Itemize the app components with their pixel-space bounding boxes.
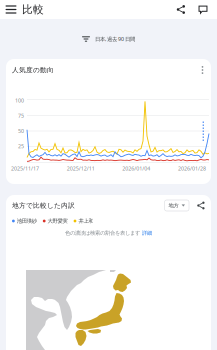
staticText: 大野愛実 bbox=[48, 218, 68, 224]
staticText: 2026/01/28 bbox=[178, 165, 206, 172]
button[interactable]: 詳細 bbox=[142, 230, 152, 236]
staticText: 詳細 bbox=[142, 230, 152, 236]
staticText: 比較 bbox=[22, 3, 44, 16]
button[interactable]: Share bbox=[170, 0, 192, 19]
button[interactable]: Share bbox=[195, 199, 207, 212]
staticText: 地方で比較した内訳 bbox=[12, 201, 75, 210]
staticText: 色の濃淡は検索の割合を表します bbox=[65, 230, 140, 236]
button[interactable]: Menu bbox=[0, 0, 22, 19]
staticText: 2025/11/17 bbox=[11, 165, 39, 172]
button[interactable]: More options bbox=[196, 61, 209, 78]
staticText: 地方 bbox=[169, 202, 179, 209]
button[interactable]: Send feedback bbox=[192, 0, 214, 19]
staticText: 50 bbox=[18, 127, 24, 135]
button[interactable]: 地方 bbox=[165, 200, 189, 211]
staticText: 25 bbox=[18, 143, 24, 150]
button[interactable]: 日本, 過去 90 日間 bbox=[76, 29, 141, 49]
staticText: 池田瑛紗 bbox=[17, 218, 37, 224]
staticText: 75 bbox=[18, 112, 24, 119]
staticText: 100 bbox=[15, 97, 24, 104]
staticText: 2026/01/04 bbox=[122, 165, 150, 172]
staticText: 井上和 bbox=[78, 218, 93, 224]
staticText: 日本, 過去 90 日間 bbox=[95, 35, 135, 43]
staticText: 人気度の動向 bbox=[12, 66, 54, 74]
staticText: 2025/12/11 bbox=[67, 165, 95, 172]
